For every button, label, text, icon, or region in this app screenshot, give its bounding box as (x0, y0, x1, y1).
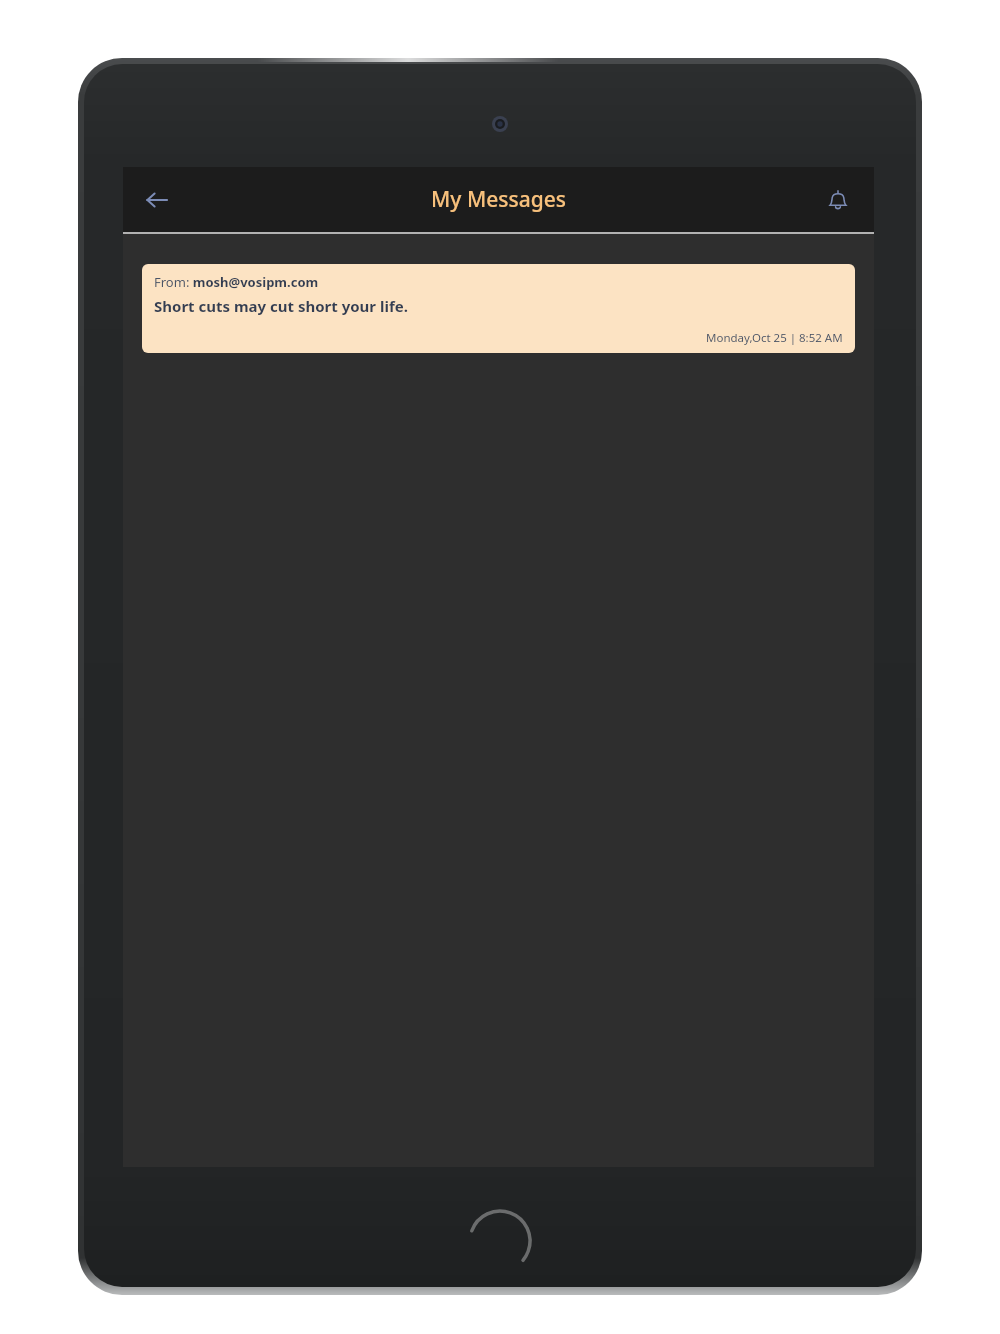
button[interactable]: Notifications (814, 176, 862, 224)
staticText: My Messages (431, 185, 566, 214)
button[interactable]: From: mosh@vosipm.com (142, 264, 855, 353)
staticText: From: mosh@vosipm.com (154, 273, 319, 291)
staticText: Short cuts may cut short your life. (154, 296, 408, 316)
button[interactable]: Back (133, 176, 181, 224)
staticText: Monday,Oct 25 | 8:52 AM (706, 330, 843, 346)
